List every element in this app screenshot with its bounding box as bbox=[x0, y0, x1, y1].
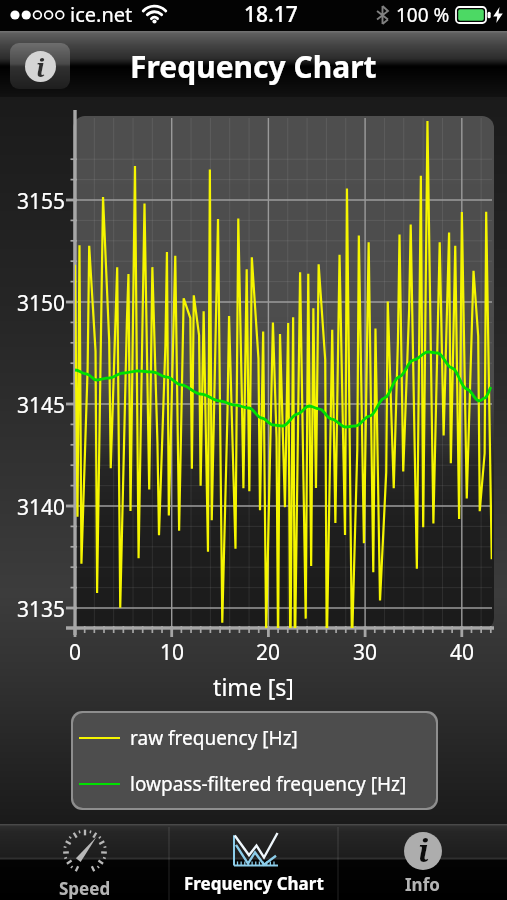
staticText: lowpass-filtered frequency [Hz] bbox=[130, 771, 407, 797]
staticText: 18.17 bbox=[244, 0, 298, 29]
staticText: 40 bbox=[437, 638, 487, 667]
staticText: 10 bbox=[147, 638, 197, 667]
staticText: i bbox=[418, 830, 429, 868]
staticText: Frequency Chart bbox=[184, 872, 324, 895]
staticText: raw frequency [Hz] bbox=[130, 725, 298, 751]
button[interactable]: i bbox=[338, 824, 507, 900]
staticText: 3150 bbox=[10, 289, 65, 318]
staticText: time [s] bbox=[0, 671, 507, 702]
button[interactable]: Info bbox=[10, 43, 70, 89]
staticText: Frequency Chart bbox=[130, 46, 377, 87]
staticText: Info bbox=[405, 873, 440, 896]
staticText: 3155 bbox=[10, 187, 65, 216]
staticText: 3140 bbox=[10, 493, 65, 522]
staticText: 3135 bbox=[10, 595, 65, 624]
staticText: Speed bbox=[59, 877, 111, 900]
staticText: 100 % bbox=[396, 2, 450, 28]
staticText: ice.net bbox=[70, 1, 133, 28]
staticText: 3145 bbox=[10, 391, 65, 420]
staticText: i bbox=[36, 50, 45, 81]
staticText: 0 bbox=[50, 638, 100, 667]
button[interactable]: Frequency Chart bbox=[169, 824, 338, 900]
staticText: 20 bbox=[243, 638, 293, 667]
button[interactable]: Speed bbox=[0, 824, 169, 900]
staticText: 30 bbox=[340, 638, 390, 667]
